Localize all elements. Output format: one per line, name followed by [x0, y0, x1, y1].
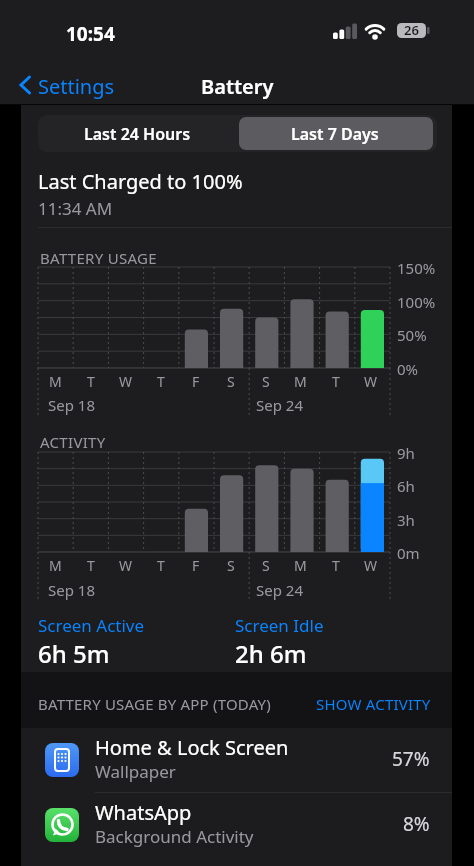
- staticText: 100%: [397, 292, 436, 312]
- staticText: Last 24 Hours: [84, 123, 191, 145]
- staticText: 8%: [403, 811, 430, 837]
- staticText: 0m: [397, 543, 420, 563]
- staticText: 6h: [397, 476, 415, 496]
- staticText: W: [364, 556, 378, 574]
- staticText: 57%: [392, 746, 430, 772]
- staticText: W: [119, 372, 133, 390]
- staticText: BATTERY USAGE BY APP (TODAY): [38, 694, 271, 714]
- staticText: Sep 18: [48, 395, 95, 415]
- staticText: Sep 24: [256, 580, 303, 600]
- staticText: Sep 24: [256, 395, 303, 415]
- staticText: T: [332, 372, 340, 390]
- staticText: M: [294, 372, 307, 390]
- staticText: M: [294, 556, 307, 574]
- staticText: WhatsApp: [95, 799, 192, 826]
- button[interactable]: Home & Lock Screen: [21, 728, 452, 792]
- staticText: 150%: [397, 258, 436, 278]
- staticText: 50%: [397, 325, 427, 345]
- staticText: Home & Lock Screen: [95, 734, 289, 761]
- staticText: M: [49, 556, 62, 574]
- staticText: T: [157, 556, 165, 574]
- staticText: F: [192, 556, 200, 574]
- staticText: W: [119, 556, 133, 574]
- staticText: S: [227, 556, 235, 574]
- staticText: Sep 18: [48, 580, 95, 600]
- staticText: T: [332, 556, 340, 574]
- staticText: T: [87, 372, 95, 390]
- staticText: 9h: [397, 443, 415, 463]
- staticText: W: [364, 372, 378, 390]
- staticText: Last Charged to 100%: [38, 168, 243, 195]
- staticText: 6h 5m: [38, 637, 110, 670]
- staticText: BATTERY USAGE: [40, 248, 157, 268]
- staticText: S: [262, 556, 270, 574]
- staticText: 10:54: [66, 21, 115, 47]
- staticText: SHOW ACTIVITY: [316, 694, 431, 714]
- staticText: Screen Idle: [235, 614, 324, 637]
- staticText: 3h: [397, 510, 415, 530]
- staticText: Battery: [201, 73, 274, 100]
- button[interactable]: Last 7 Days: [237, 115, 433, 152]
- staticText: 2h 6m: [235, 637, 307, 670]
- button[interactable]: SHOW ACTIVITY: [316, 694, 431, 714]
- staticText: Screen Active: [38, 614, 145, 637]
- staticText: Last 7 Days: [291, 123, 379, 145]
- button[interactable]: WhatsApp: [21, 793, 452, 857]
- staticText: T: [157, 372, 165, 390]
- staticText: Background Activity: [95, 825, 254, 848]
- staticText: S: [227, 372, 235, 390]
- staticText: S: [262, 372, 270, 390]
- staticText: 11:34 AM: [38, 197, 113, 220]
- staticText: M: [49, 372, 62, 390]
- staticText: 0%: [397, 359, 419, 379]
- staticText: F: [192, 372, 200, 390]
- staticText: 26: [404, 21, 419, 39]
- staticText: ACTIVITY: [40, 432, 106, 452]
- staticText: Settings: [38, 73, 115, 100]
- staticText: Wallpaper: [95, 760, 176, 783]
- button[interactable]: Last 24 Hours: [38, 115, 237, 152]
- button[interactable]: [14, 66, 130, 102]
- staticText: T: [87, 556, 95, 574]
